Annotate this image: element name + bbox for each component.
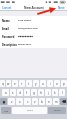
button[interactable]: i <box>47 80 53 87</box>
staticText: Firefly Mail <box>18 43 32 46</box>
staticText: e <box>14 82 16 86</box>
staticText: t <box>28 82 30 86</box>
button[interactable]: k <box>52 89 58 96</box>
staticText: v <box>34 100 36 104</box>
staticText: z <box>11 100 13 104</box>
button[interactable]: 123 <box>1 107 11 114</box>
button[interactable]: x <box>16 98 23 105</box>
button[interactable]: Next <box>56 5 67 11</box>
staticText: New Account <box>24 6 44 10</box>
button[interactable]: e <box>12 80 18 87</box>
staticText: g <box>33 91 35 95</box>
staticText: Email <box>2 27 10 30</box>
button[interactable]: p <box>61 80 67 87</box>
button[interactable]: Name <box>0 16 67 24</box>
staticText: j <box>48 91 49 95</box>
staticText: r <box>21 82 23 86</box>
button[interactable]: n <box>46 98 52 105</box>
staticText: return <box>54 109 61 112</box>
button[interactable]: Email <box>0 24 67 32</box>
staticText: m <box>55 100 58 104</box>
button[interactable]: Password <box>0 32 67 40</box>
button[interactable]: space <box>12 107 47 114</box>
button[interactable]: w <box>6 80 11 87</box>
staticText: f <box>26 91 28 95</box>
button[interactable]: d <box>17 89 23 96</box>
staticText: u <box>42 82 44 86</box>
staticText: l <box>62 91 63 95</box>
button[interactable]: o <box>54 80 60 87</box>
staticText: n <box>48 100 50 104</box>
button[interactable]: u <box>40 80 46 87</box>
button[interactable]: Shift <box>0 98 7 105</box>
button[interactable]: z <box>8 98 15 105</box>
button[interactable]: return <box>48 107 66 114</box>
staticText: i <box>50 82 51 86</box>
staticText: w <box>7 82 10 86</box>
button[interactable]: Cancel <box>0 5 14 11</box>
staticText: alex@firefly.com <box>18 27 38 30</box>
button[interactable]: l <box>59 89 65 96</box>
button[interactable]: Backspace <box>60 98 67 105</box>
staticText: Description <box>2 43 17 46</box>
staticText: p <box>63 82 65 86</box>
staticText: Alex Firefly <box>18 19 32 22</box>
staticText: d <box>19 91 21 95</box>
button[interactable]: c <box>24 98 31 105</box>
staticText: space <box>27 109 33 112</box>
staticText: o <box>56 82 58 86</box>
staticText: a <box>5 91 7 95</box>
button[interactable]: g <box>31 89 37 96</box>
staticText: 123 <box>4 109 9 112</box>
button[interactable]: h <box>38 89 44 96</box>
staticText: q <box>2 82 4 86</box>
button[interactable]: a <box>2 89 9 96</box>
button[interactable]: v <box>32 98 38 105</box>
button[interactable]: j <box>45 89 51 96</box>
staticText: x <box>19 100 21 104</box>
button[interactable]: b <box>39 98 45 105</box>
staticText: Name <box>2 19 10 22</box>
staticText: Cancel <box>2 6 12 10</box>
button[interactable]: m <box>53 98 59 105</box>
staticText: k <box>54 91 56 95</box>
button[interactable]: Description <box>0 40 67 48</box>
staticText: s <box>12 91 14 95</box>
staticText: h <box>40 91 42 95</box>
button[interactable]: s <box>10 89 16 96</box>
staticText: Password <box>2 35 15 38</box>
staticText: y <box>35 82 37 86</box>
staticText: Next <box>58 6 65 10</box>
button[interactable]: f <box>24 89 30 96</box>
staticText: b <box>41 100 43 104</box>
button[interactable]: r <box>19 80 25 87</box>
button[interactable]: t <box>26 80 32 87</box>
staticText: c <box>27 100 29 104</box>
button[interactable]: q <box>0 80 5 87</box>
button[interactable]: y <box>33 80 39 87</box>
